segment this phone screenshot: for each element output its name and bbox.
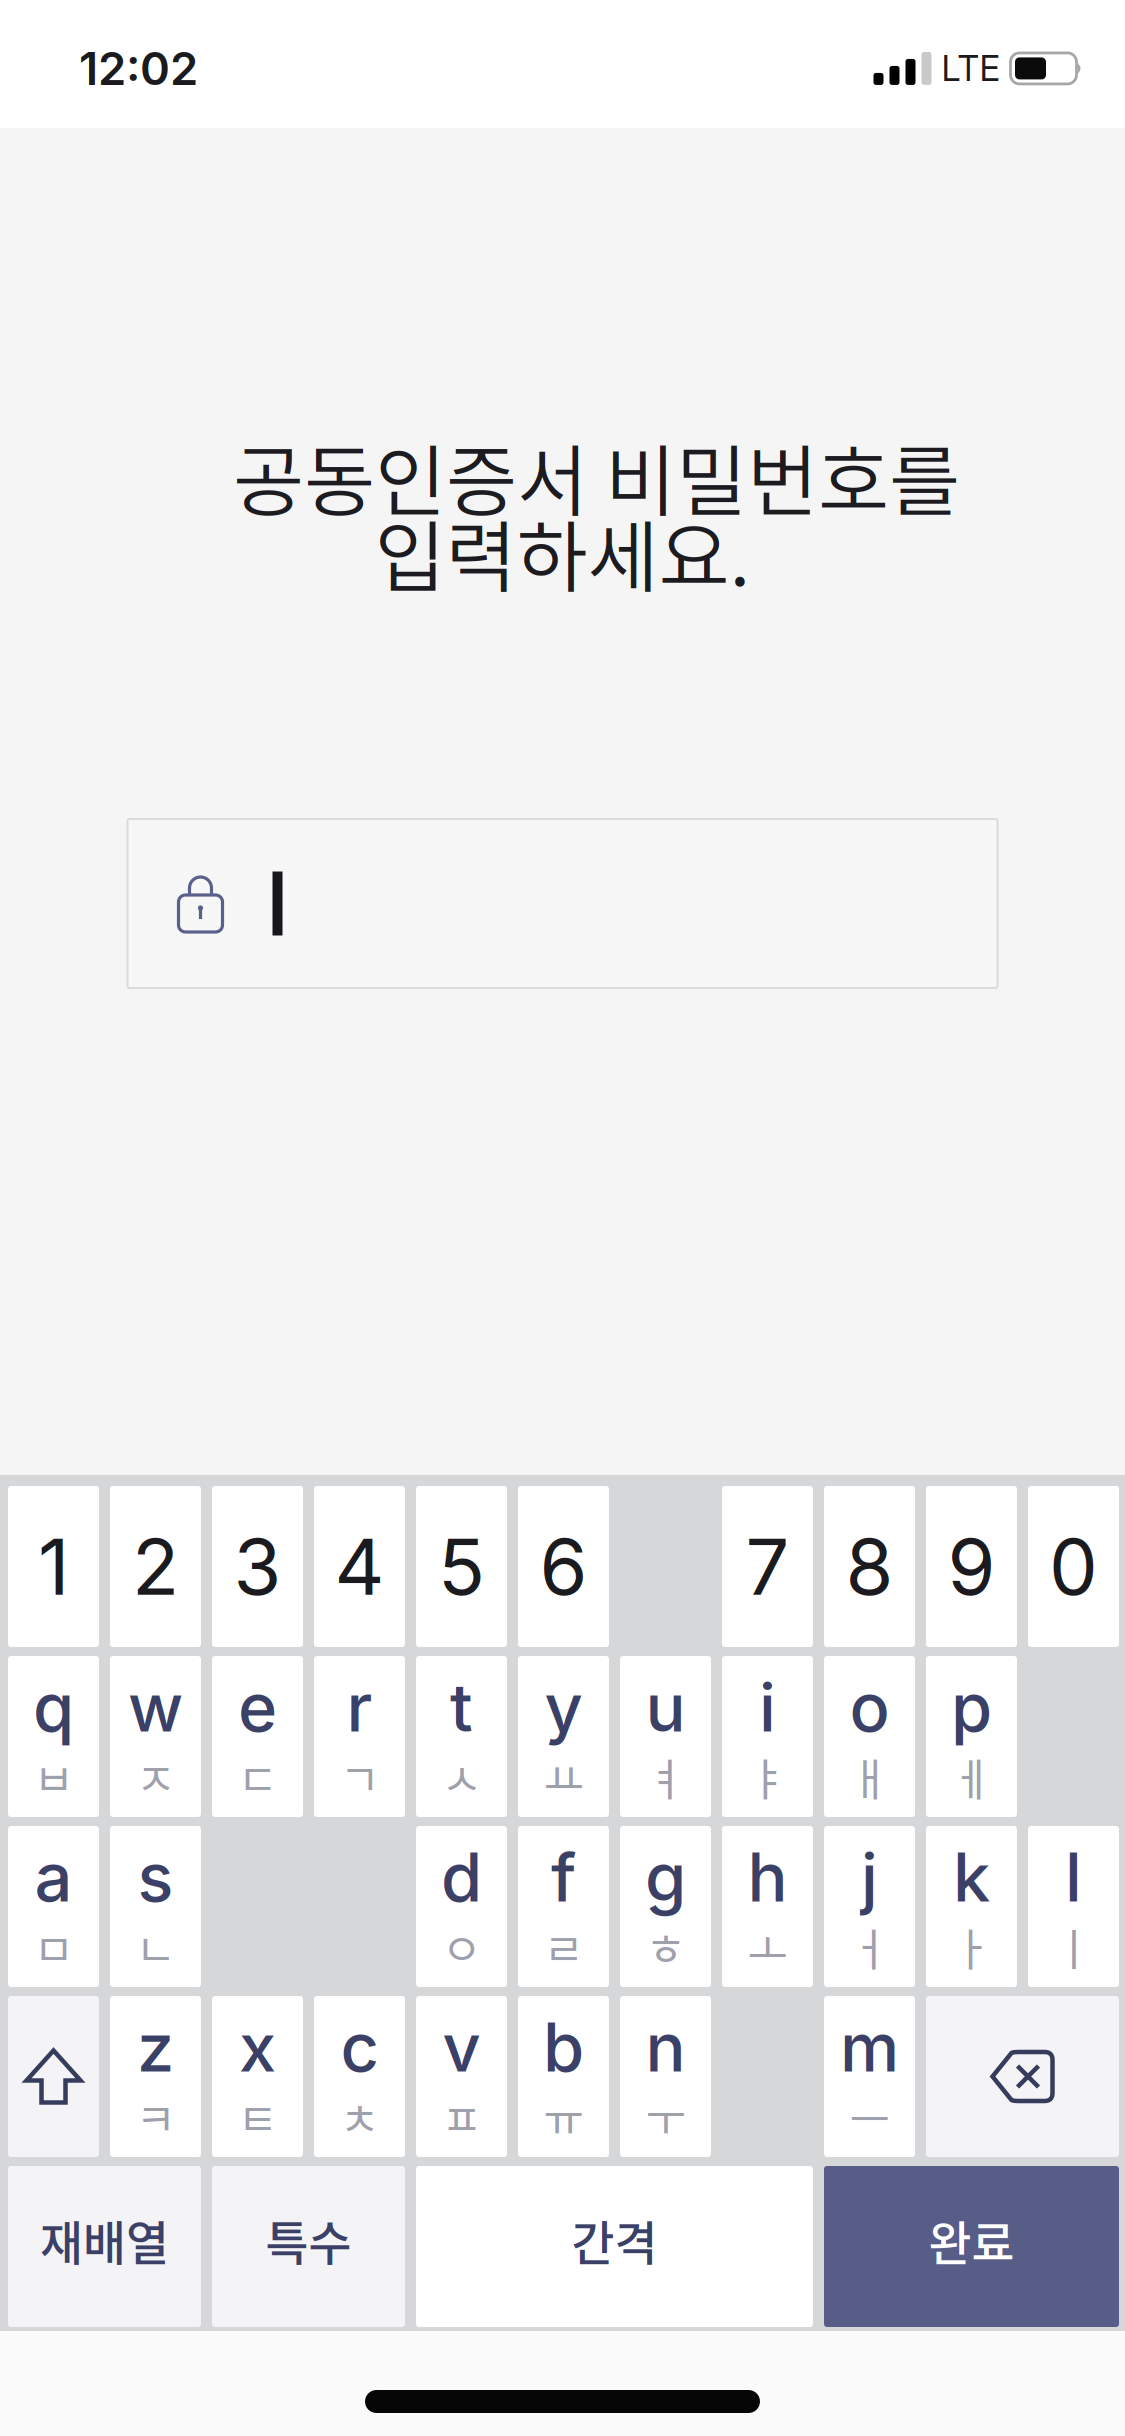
button[interactable]: 0 — [1028, 1486, 1119, 1647]
button[interactable]: w — [110, 1656, 201, 1817]
staticText: o — [849, 1667, 889, 1748]
staticText: ㅏ — [951, 1915, 991, 1979]
staticText: c — [340, 2007, 378, 2088]
staticText: x — [239, 2007, 276, 2088]
staticText: LTE — [941, 47, 999, 89]
button[interactable]: f — [518, 1826, 609, 1987]
staticText: y — [544, 1667, 582, 1748]
button[interactable]: p — [926, 1656, 1017, 1817]
button[interactable]: b — [518, 1996, 609, 2157]
staticText: ㅡ — [849, 2085, 889, 2149]
button[interactable]: y — [518, 1656, 609, 1817]
button[interactable]: q — [8, 1656, 99, 1817]
staticText: k — [953, 1837, 990, 1918]
staticText: l — [1065, 1837, 1082, 1918]
button[interactable]: 8 — [824, 1486, 915, 1647]
button[interactable]: t — [416, 1656, 507, 1817]
staticText: ㅜ — [645, 2085, 685, 2149]
staticText: f — [551, 1837, 576, 1918]
button[interactable]: 비밀번호 입력란 — [127, 819, 997, 988]
button[interactable]: Backspace — [926, 1996, 1119, 2157]
staticText: w — [128, 1667, 183, 1748]
staticText: s — [137, 1837, 173, 1918]
button[interactable]: 6 — [518, 1486, 609, 1647]
staticText: ㅅ — [441, 1745, 481, 1809]
button[interactable]: 특수 — [212, 2166, 405, 2327]
staticText: 입력하세요. — [374, 496, 750, 608]
button[interactable]: 4 — [314, 1486, 405, 1647]
staticText: 6 — [539, 1520, 587, 1613]
staticText: a — [34, 1837, 72, 1918]
staticText: g — [645, 1837, 686, 1918]
button[interactable]: c — [314, 1996, 405, 2157]
button[interactable]: j — [824, 1826, 915, 1987]
button[interactable]: g — [620, 1826, 711, 1987]
staticText: i — [759, 1667, 776, 1748]
button[interactable]: s — [110, 1826, 201, 1987]
staticText: b — [543, 2007, 584, 2088]
staticText: e — [238, 1667, 277, 1748]
staticText: 8 — [845, 1520, 893, 1613]
button[interactable]: 간격 — [416, 2166, 813, 2327]
staticText: r — [346, 1667, 372, 1748]
staticText: u — [645, 1667, 685, 1748]
staticText: ㅓ — [849, 1915, 889, 1979]
staticText: ㅂ — [33, 1745, 73, 1809]
staticText: h — [747, 1837, 787, 1918]
staticText: ㅎ — [645, 1915, 685, 1979]
button[interactable]: Shift — [8, 1996, 99, 2157]
button[interactable]: e — [212, 1656, 303, 1817]
staticText: 완료 — [928, 2206, 1014, 2274]
staticText: 5 — [438, 1520, 485, 1613]
button[interactable]: o — [824, 1656, 915, 1817]
staticText: 4 — [334, 1520, 384, 1613]
button[interactable]: 2 — [110, 1486, 201, 1647]
staticText: ㅋ — [135, 2085, 175, 2149]
button[interactable]: n — [620, 1996, 711, 2157]
staticText: ㅣ — [1053, 1915, 1093, 1979]
button[interactable]: k — [926, 1826, 1017, 1987]
button[interactable]: z — [110, 1996, 201, 2157]
staticText: ㅔ — [951, 1745, 991, 1809]
staticText: ㅑ — [747, 1745, 787, 1809]
staticText: m — [840, 2007, 899, 2088]
button[interactable]: m — [824, 1996, 915, 2157]
staticText: ㅠ — [543, 2085, 583, 2149]
button[interactable]: 완료 — [824, 2166, 1119, 2327]
staticText: 3 — [233, 1520, 281, 1613]
button[interactable]: v — [416, 1996, 507, 2157]
staticText: ㅛ — [543, 1745, 583, 1809]
button[interactable]: 7 — [722, 1486, 813, 1647]
button[interactable]: d — [416, 1826, 507, 1987]
staticText: z — [137, 2007, 174, 2088]
staticText: ㅕ — [645, 1745, 685, 1809]
button[interactable]: i — [722, 1656, 813, 1817]
staticText: d — [441, 1837, 482, 1918]
button[interactable]: 9 — [926, 1486, 1017, 1647]
staticText: j — [861, 1837, 878, 1918]
button[interactable]: l — [1028, 1826, 1119, 1987]
button[interactable]: a — [8, 1826, 99, 1987]
staticText: n — [645, 2007, 685, 2088]
button[interactable]: 재배열 — [8, 2166, 201, 2327]
staticText: 공동인증서 비밀번호를 — [233, 420, 960, 532]
staticText: ㅐ — [849, 1745, 889, 1809]
button[interactable]: 3 — [212, 1486, 303, 1647]
staticText: 재배열 — [40, 2206, 169, 2274]
staticText: 9 — [947, 1520, 995, 1613]
staticText: ㅍ — [441, 2085, 481, 2149]
staticText: ㅇ — [441, 1915, 481, 1979]
staticText: 2 — [132, 1520, 179, 1613]
button[interactable]: u — [620, 1656, 711, 1817]
button[interactable]: h — [722, 1826, 813, 1987]
button[interactable]: 1 — [8, 1486, 99, 1647]
button[interactable]: 5 — [416, 1486, 507, 1647]
staticText: v — [442, 2007, 480, 2088]
staticText: ㄴ — [135, 1915, 175, 1979]
button[interactable]: r — [314, 1656, 405, 1817]
staticText: 7 — [745, 1520, 789, 1613]
staticText: ㄱ — [339, 1745, 379, 1809]
staticText: ㅈ — [135, 1745, 175, 1809]
button[interactable]: x — [212, 1996, 303, 2157]
staticText: 1 — [38, 1520, 69, 1613]
